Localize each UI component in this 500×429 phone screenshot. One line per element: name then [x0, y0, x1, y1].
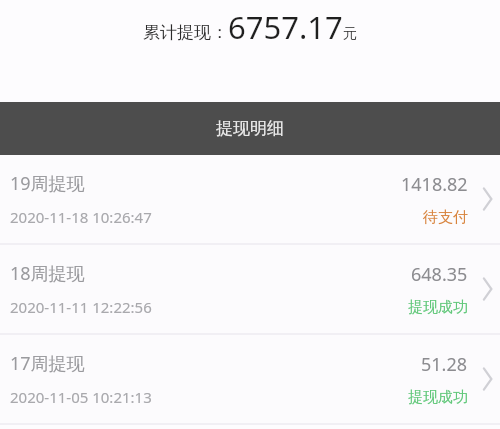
staticText: 17周提现 — [10, 351, 85, 376]
staticText: 2020-11-11 12:22:56 — [10, 297, 152, 317]
staticText: 2020-11-18 10:26:47 — [10, 207, 152, 227]
staticText: 提现成功 — [408, 388, 468, 407]
staticText: 累计提现： — [143, 22, 228, 43]
staticText: 51.28 — [421, 352, 468, 377]
staticText: 元 — [343, 25, 357, 43]
staticText: 待支付 — [423, 208, 468, 227]
staticText: 2020-11-05 10:21:13 — [10, 387, 152, 407]
button[interactable]: 19周提现 — [0, 155, 500, 243]
other: View withdrawal details — [476, 357, 498, 401]
staticText: 1418.82 — [401, 172, 468, 197]
other: View withdrawal details — [476, 267, 498, 311]
button[interactable]: 17周提现 — [0, 335, 500, 423]
other: View withdrawal details — [476, 177, 498, 221]
button[interactable]: 18周提现 — [0, 245, 500, 333]
staticText: 提现成功 — [408, 298, 468, 317]
staticText: 648.35 — [411, 262, 468, 287]
staticText: 6757.17 — [228, 6, 343, 48]
staticText: 提现明细 — [216, 118, 284, 139]
staticText: 19周提现 — [10, 171, 85, 196]
staticText: 18周提现 — [10, 261, 85, 286]
